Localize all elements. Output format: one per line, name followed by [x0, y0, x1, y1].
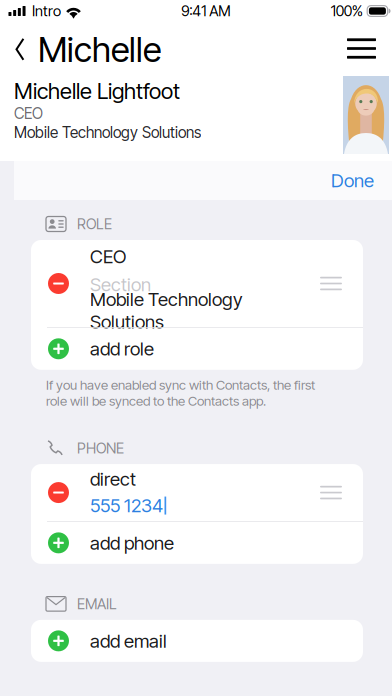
staticText: 100%: [331, 2, 363, 20]
staticText: Mobile Technology Solutions: [14, 123, 201, 142]
staticText: add role: [90, 337, 154, 360]
staticText: Mobile Technology Solutions: [90, 288, 243, 333]
staticText: add email: [90, 630, 167, 652]
button[interactable]: add email: [31, 620, 363, 662]
button[interactable]: Done: [331, 159, 392, 202]
button[interactable]: Michelle: [0, 17, 161, 73]
staticText: If you have enabled sync with Contacts, …: [46, 377, 315, 409]
staticText: EMAIL: [77, 595, 117, 613]
staticText: Intro: [32, 2, 61, 20]
staticText: 555 1234: [90, 494, 163, 517]
staticText: Section: [90, 273, 151, 296]
staticText: 9:41 AM: [181, 2, 230, 20]
button[interactable]: Menu: [331, 25, 392, 65]
staticText: Michelle: [38, 28, 161, 70]
staticText: CEO: [90, 245, 126, 268]
staticText: Michelle Lightfoot: [14, 78, 180, 104]
staticText: ROLE: [77, 215, 112, 233]
button[interactable]: add phone: [31, 522, 363, 564]
staticText: Done: [331, 169, 374, 192]
button[interactable]: add role: [31, 328, 363, 370]
staticText: CEO: [14, 104, 43, 123]
staticText: PHONE: [77, 439, 124, 457]
staticText: add phone: [90, 532, 174, 554]
staticText: direct: [90, 468, 136, 490]
